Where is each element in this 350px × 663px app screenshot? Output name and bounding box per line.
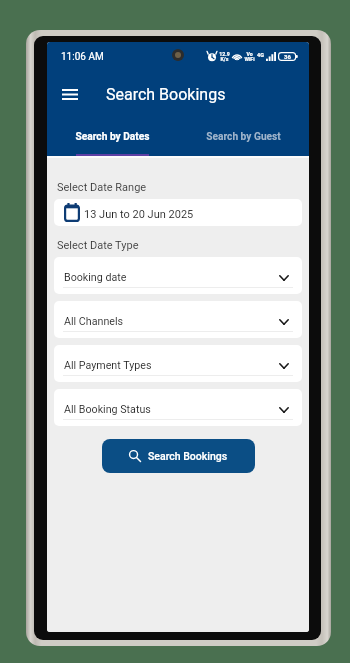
staticText: All Booking Status	[64, 403, 151, 416]
button[interactable]: Search by Guest	[178, 120, 309, 156]
staticText: Booking date	[64, 271, 127, 284]
staticText: Select Date Type	[57, 239, 139, 252]
button[interactable]: All Payment Types	[54, 345, 302, 382]
staticText: Search Bookings	[106, 85, 226, 104]
button[interactable]: Search by Dates	[47, 120, 178, 156]
button[interactable]: Search Bookings	[102, 439, 255, 473]
button[interactable]: Open navigation menu	[58, 82, 82, 106]
button[interactable]: All Booking Status	[54, 389, 302, 426]
staticText: 12.9 K/s	[219, 51, 230, 62]
staticText: All Payment Types	[64, 359, 152, 372]
button[interactable]: Booking date	[54, 257, 302, 294]
staticText: Search by Guest	[206, 131, 281, 143]
button[interactable]: All Channels	[54, 301, 302, 338]
staticText: 13 Jun to 20 Jun 2025	[84, 208, 194, 221]
staticText: 36	[284, 53, 291, 60]
staticText: All Channels	[64, 315, 124, 328]
staticText: 4G	[257, 52, 264, 58]
staticText: Search by Dates	[75, 131, 150, 143]
staticText: Search Bookings	[148, 450, 228, 462]
staticText: 11:06 AM	[61, 51, 104, 63]
button[interactable]: 13 Jun to 20 Jun 2025	[54, 199, 302, 226]
staticText: Vo WiFi	[244, 51, 255, 62]
staticText: Select Date Range	[57, 181, 147, 194]
